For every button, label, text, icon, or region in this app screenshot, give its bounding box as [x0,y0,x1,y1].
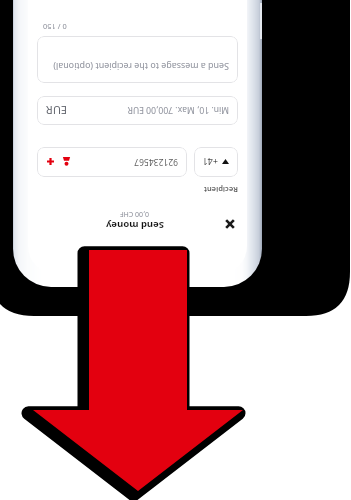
staticText: 0,00 CHF [120,210,149,219]
button[interactable]: Send a message to the recipient (optiona… [46,46,229,73]
staticText: Min. 10, Max. 700,00 EUR [127,104,229,116]
staticText: Send a message to the recipient (optiona… [53,61,229,73]
button[interactable]: +41 [194,147,238,177]
button[interactable]: 921234567 [46,147,178,177]
staticText: 0 / 150 [43,22,238,32]
staticText: EUR [46,103,67,118]
staticText: 921234567 [134,156,178,168]
staticText: +41 [202,156,218,168]
staticText: Send money [106,219,164,232]
button[interactable]: Close [222,216,238,232]
button[interactable]: Min. 10, Max. 700,00 EUR [46,96,229,125]
staticText: Recipient [203,185,238,195]
